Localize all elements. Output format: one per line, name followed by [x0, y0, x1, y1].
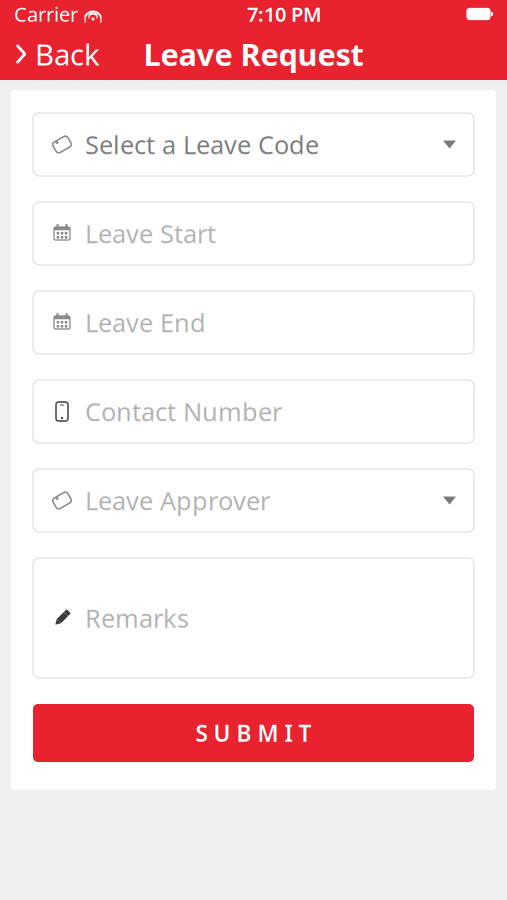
button[interactable]: Select a Leave Code: [33, 113, 474, 176]
staticText: Leave Request: [143, 34, 363, 74]
staticText: Remarks: [85, 601, 189, 635]
staticText: Back: [35, 34, 100, 73]
button[interactable]: Leave Approver: [33, 469, 474, 532]
button[interactable]: Contact Number: [33, 380, 474, 443]
staticText: Leave Approver: [85, 484, 270, 517]
staticText: Select a Leave Code: [85, 128, 319, 161]
button[interactable]: Leave Start: [33, 202, 474, 265]
button[interactable]: S U B M I T: [33, 704, 474, 762]
staticText: Leave Start: [85, 217, 216, 250]
staticText: S U B M I T: [195, 718, 311, 748]
staticText: Leave End: [85, 306, 206, 339]
staticText: Contact Number: [85, 395, 282, 428]
staticText: 7:10 PM: [247, 1, 322, 27]
button[interactable]: Back: [0, 28, 114, 80]
button[interactable]: Leave End: [33, 291, 474, 354]
button[interactable]: Remarks: [33, 558, 474, 678]
staticText: Carrier: [14, 1, 78, 27]
